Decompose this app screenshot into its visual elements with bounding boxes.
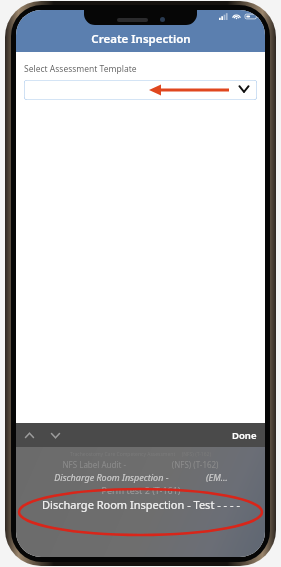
staticText: NFS Label Audit - (NFS) (T-162) (62, 459, 219, 470)
staticText: Select Assessment Template (24, 63, 137, 75)
staticText: Create Inspection (91, 31, 191, 47)
staticText: Discharge Room Inspection - Test - - - - (42, 497, 240, 512)
button[interactable] (24, 80, 257, 100)
button[interactable]: Previous field (16, 423, 42, 447)
staticText: Discharge Room Inspection - (EM… (54, 471, 228, 483)
button[interactable]: Done (224, 423, 265, 447)
staticText: Done (232, 429, 257, 442)
staticText: Perm test 2 (T-161) (101, 484, 181, 496)
button[interactable]: Next field (42, 423, 68, 447)
